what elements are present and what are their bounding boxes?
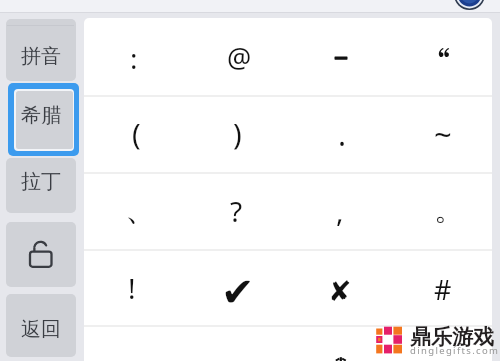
staticText: . bbox=[338, 114, 347, 155]
button[interactable]: ) bbox=[186, 96, 288, 172]
staticText: @ bbox=[227, 39, 252, 76]
button[interactable] bbox=[391, 19, 493, 95]
button[interactable]: ✘ bbox=[289, 249, 391, 325]
staticText: ? bbox=[230, 192, 243, 230]
button[interactable]: , bbox=[289, 173, 391, 249]
button[interactable] bbox=[289, 19, 391, 95]
button[interactable]: Unlock bbox=[6, 222, 76, 287]
staticText: ✘ bbox=[328, 275, 352, 308]
staticText: ! bbox=[128, 269, 136, 307]
button[interactable]: 、 bbox=[83, 173, 185, 249]
button[interactable]: 返回 bbox=[6, 294, 76, 357]
button[interactable]: 希腊 bbox=[8, 83, 79, 156]
button[interactable]: Profile bbox=[454, 0, 485, 10]
staticText: # bbox=[434, 271, 452, 308]
staticText: ( bbox=[132, 114, 141, 153]
button[interactable]: ✔ bbox=[186, 249, 288, 325]
button[interactable]: ? bbox=[186, 173, 288, 249]
staticText: 。 bbox=[434, 191, 464, 229]
staticText: 、 bbox=[125, 189, 157, 229]
staticText: 拼音 bbox=[21, 44, 61, 69]
staticText: 希腊 bbox=[21, 103, 61, 128]
button[interactable]: ~ bbox=[391, 96, 493, 172]
button[interactable]: ( bbox=[83, 96, 185, 172]
button[interactable]: # bbox=[391, 249, 493, 325]
staticText: ✔ bbox=[221, 269, 255, 316]
staticText: ) bbox=[233, 114, 242, 153]
button[interactable]: @ bbox=[186, 19, 288, 95]
button[interactable]: 。 bbox=[391, 173, 493, 249]
button[interactable]: 拉丁 bbox=[6, 158, 76, 213]
staticText: 鼎乐游戏 bbox=[410, 324, 494, 350]
staticText: : bbox=[130, 39, 138, 77]
button[interactable]: : bbox=[83, 19, 185, 95]
staticText: 返回 bbox=[21, 317, 61, 342]
button[interactable]: . bbox=[289, 96, 391, 172]
staticText: ~ bbox=[434, 113, 452, 155]
staticText: , bbox=[336, 192, 344, 230]
button[interactable]: ! bbox=[83, 249, 185, 325]
button[interactable]: 拼音 bbox=[6, 19, 76, 81]
staticText: 拉丁 bbox=[21, 169, 61, 194]
button[interactable]: Yen symbol bbox=[289, 349, 391, 361]
staticText: dinglegifts.com bbox=[410, 344, 500, 357]
